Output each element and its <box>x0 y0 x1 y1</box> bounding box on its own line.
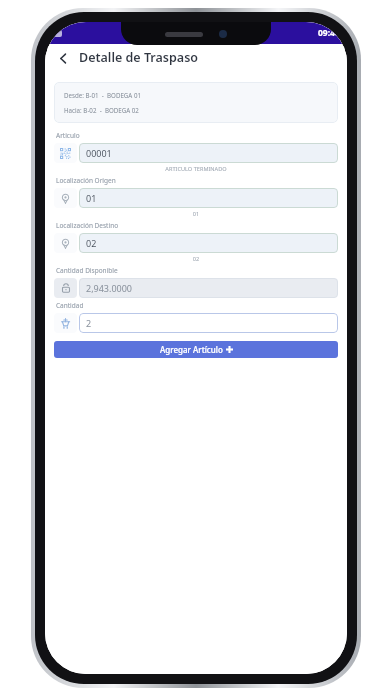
button[interactable]: 2,943.0000 <box>79 278 338 298</box>
button[interactable]: Add quantity <box>54 313 77 333</box>
staticText: 02 <box>86 237 97 249</box>
staticText: Detalle de Traspaso <box>79 49 199 66</box>
staticText: Hacia: B-02 - BODEGA 02 <box>64 106 139 114</box>
button[interactable]: Locked <box>54 278 77 298</box>
staticText: 09:44 <box>318 27 340 39</box>
staticText: Localización Destino <box>56 221 119 230</box>
button[interactable]: 00001 <box>79 143 338 163</box>
staticText: 2 <box>86 317 92 329</box>
staticText: 01 <box>86 192 97 204</box>
button[interactable]: Scan code <box>54 143 77 163</box>
button[interactable]: 2 <box>79 313 338 333</box>
button[interactable]: Back <box>53 48 73 68</box>
staticText: Localización Origen <box>56 176 116 185</box>
button[interactable]: 02 <box>79 233 338 253</box>
staticText: Cantidad <box>56 301 84 310</box>
button[interactable]: Select location <box>54 188 77 208</box>
button[interactable]: 01 <box>79 188 338 208</box>
staticText: 01 <box>54 210 338 218</box>
button[interactable]: Select location <box>54 233 77 253</box>
staticText: ARTICULO TERMINADO <box>54 165 338 173</box>
button[interactable]: Agregar Artículo <box>54 341 338 358</box>
staticText: 02 <box>54 255 338 263</box>
staticText: Cantidad Disponible <box>56 266 118 275</box>
staticText: 00001 <box>86 147 112 159</box>
staticText: Articulo <box>56 131 80 140</box>
staticText: Desde: B-01 - BODEGA 01 <box>64 91 142 99</box>
staticText: Agregar Artículo <box>160 344 223 355</box>
staticText: 2,943.0000 <box>86 282 133 294</box>
